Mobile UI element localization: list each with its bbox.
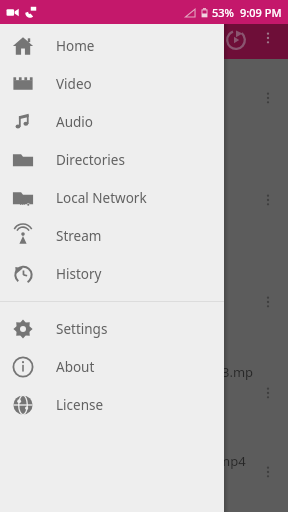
button[interactable]: License: [0, 386, 224, 424]
staticText: Video: [56, 75, 92, 93]
button[interactable]: Directories: [0, 141, 224, 179]
button[interactable]: About: [0, 348, 224, 386]
staticText: 3.mp: [222, 363, 254, 381]
button[interactable]: Audio: [0, 103, 224, 141]
staticText: About: [56, 358, 95, 376]
staticText: Local Network: [56, 189, 147, 207]
button[interactable]: More options: [258, 462, 278, 482]
staticText: Audio: [56, 113, 93, 131]
staticText: 53%: [212, 5, 234, 20]
button[interactable]: More options: [258, 28, 278, 48]
button[interactable]: Video: [0, 65, 224, 103]
button[interactable]: Local Network: [0, 179, 224, 217]
staticText: Home: [56, 37, 95, 55]
button[interactable]: Stream: [0, 217, 224, 255]
staticText: License: [56, 396, 104, 414]
staticText: Directories: [56, 151, 125, 169]
button[interactable]: More options: [258, 88, 278, 108]
button[interactable]: More options: [258, 292, 278, 312]
staticText: Stream: [56, 227, 102, 245]
button[interactable]: Refresh: [222, 26, 250, 54]
staticText: Settings: [56, 320, 108, 338]
staticText: mp4: [218, 452, 246, 470]
button[interactable]: Settings: [0, 310, 224, 348]
staticText: 9:09 PM: [240, 5, 282, 20]
button[interactable]: Home: [0, 27, 224, 65]
button[interactable]: More options: [258, 383, 278, 403]
staticText: History: [56, 265, 102, 283]
button[interactable]: History: [0, 255, 224, 293]
button[interactable]: More options: [258, 190, 278, 210]
